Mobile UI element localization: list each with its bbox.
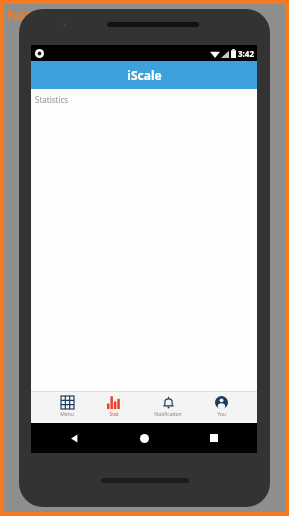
button[interactable]: Menu [56, 394, 78, 420]
button[interactable]: Home [133, 427, 155, 449]
staticText: Statistics [35, 94, 69, 105]
staticText: 3:42 [238, 48, 254, 59]
staticText: Stat [109, 411, 119, 418]
staticText: Notification [154, 411, 182, 418]
button[interactable]: Back [63, 427, 85, 449]
button[interactable]: Notification [150, 394, 186, 420]
staticText: You [217, 411, 226, 418]
staticText: Menu [60, 411, 74, 418]
button[interactable]: You [211, 394, 232, 420]
button[interactable]: Stat [103, 394, 124, 420]
staticText: iScale [127, 67, 162, 83]
button[interactable]: Recent apps [203, 427, 225, 449]
staticText: hack-cheat.org [7, 5, 112, 24]
